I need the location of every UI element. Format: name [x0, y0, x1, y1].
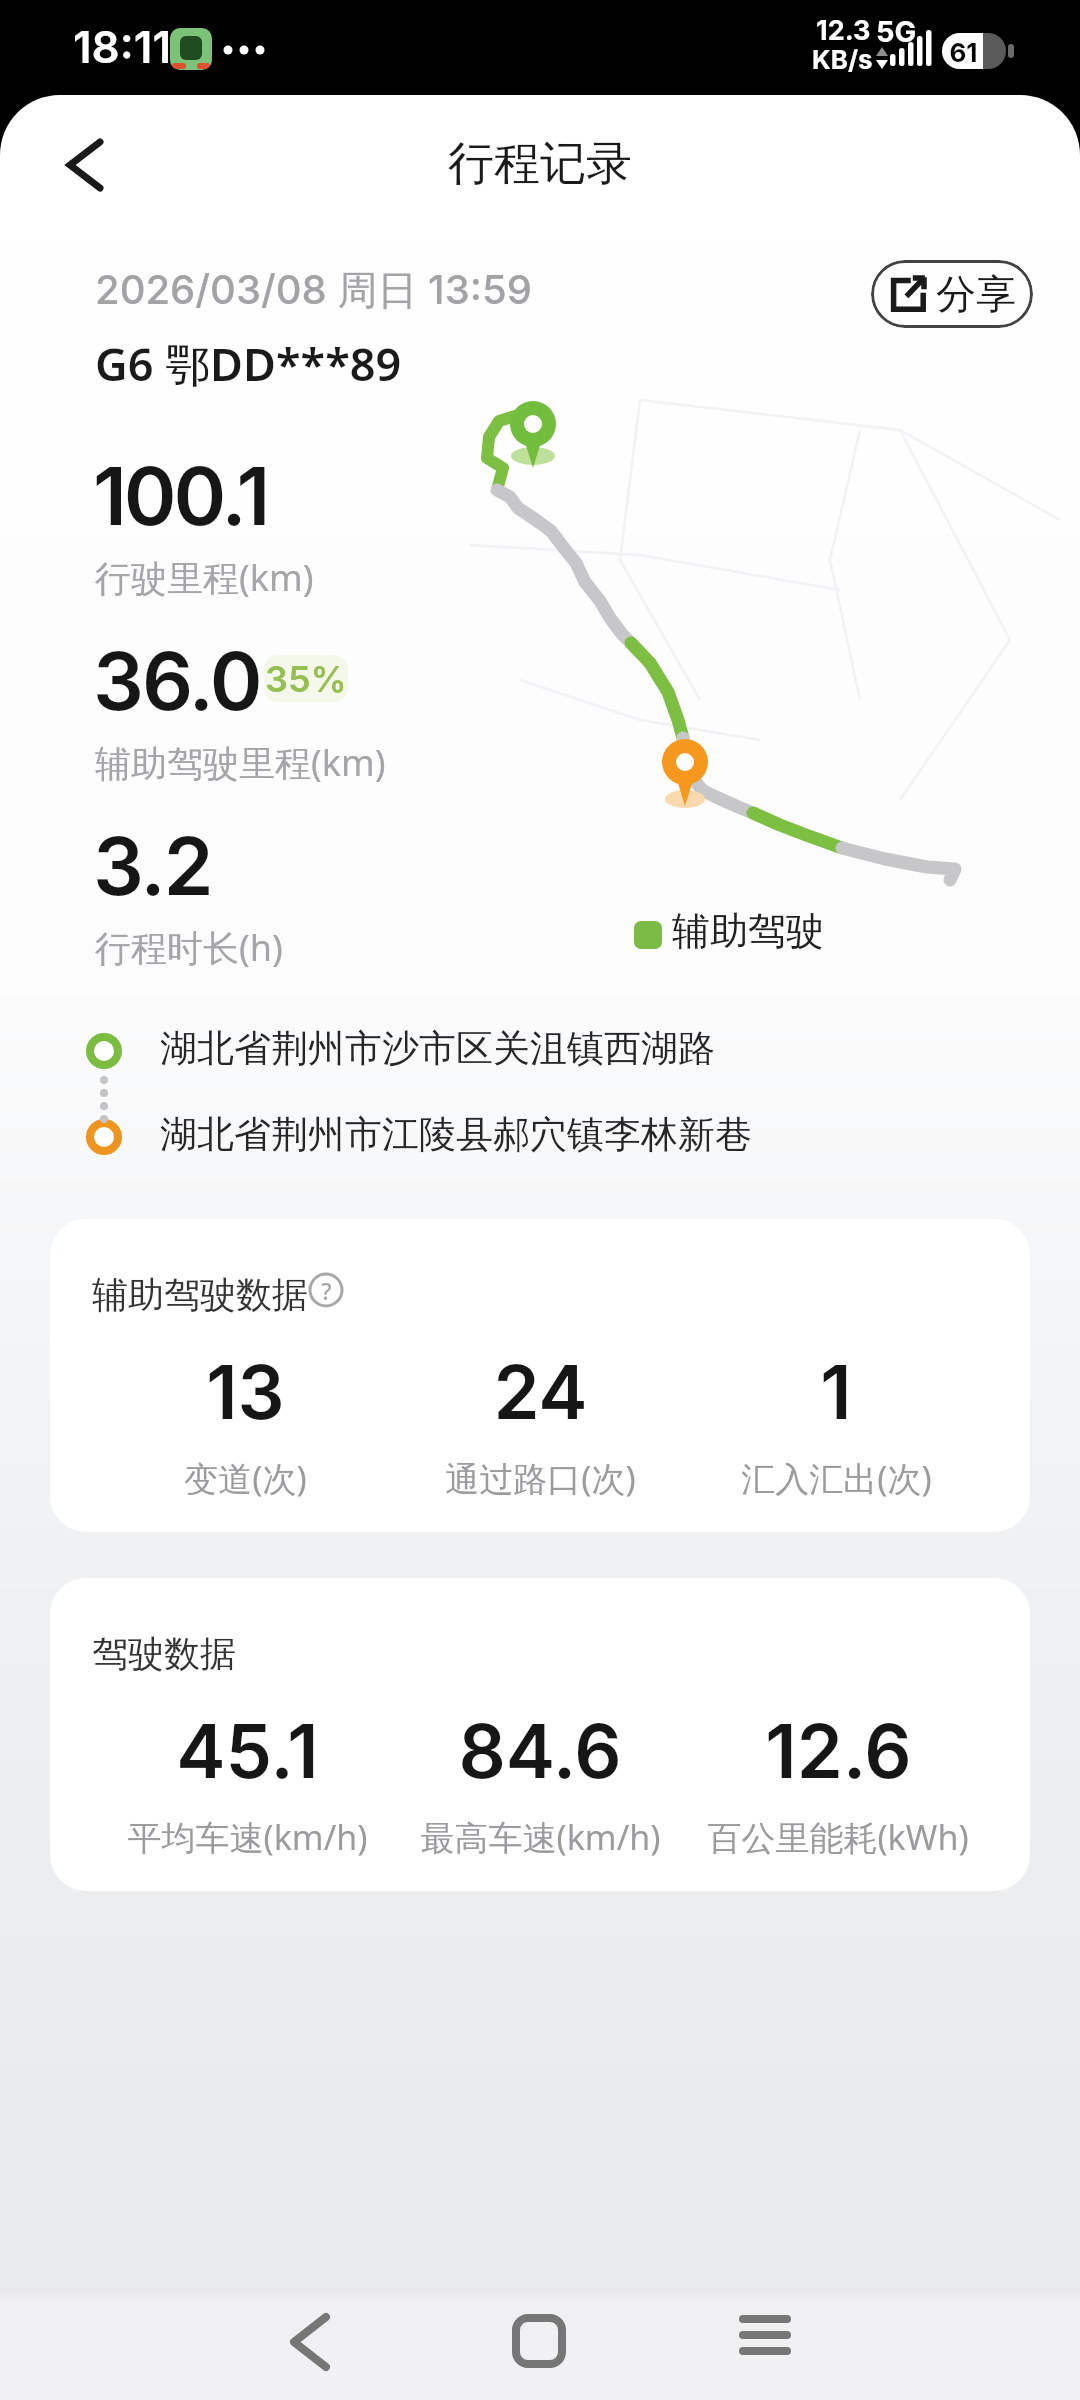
staticText: 湖北省荆州市江陵县郝穴镇李林新巷 [160, 1111, 752, 1158]
staticText: 行程时长(h) [95, 923, 283, 972]
staticText: 平均车速(km/h) [127, 1814, 368, 1860]
staticText: G6 鄂DD***89 [95, 333, 402, 394]
button[interactable]: 驾驶数据 [50, 1578, 1030, 1891]
staticText: 12.3 [816, 14, 871, 47]
staticText: 辅助驾驶数据 [92, 1272, 308, 1317]
staticText: 行驶里程(km) [95, 553, 314, 602]
staticText: 1 [820, 1347, 852, 1437]
staticText: KB/s [812, 44, 873, 75]
staticText: 84.6 [458, 1706, 622, 1796]
staticText: 最高车速(km/h) [420, 1814, 661, 1860]
staticText: 13 [206, 1347, 285, 1437]
staticText: 36.0 [93, 632, 261, 729]
staticText: 通过路口(次) [445, 1455, 636, 1501]
staticText: 变道(次) [184, 1455, 307, 1501]
staticText: 2026/03/08 周日 13:59 [95, 265, 532, 316]
staticText: 35% [265, 657, 347, 701]
staticText: 100.1 [93, 447, 268, 544]
button[interactable]: 辅助驾驶数据 [50, 1219, 1030, 1532]
button[interactable] [705, 2280, 825, 2400]
staticText: 18:11 [73, 20, 172, 73]
staticText: 驾驶数据 [92, 1631, 236, 1676]
staticText: 辅助驾驶 [672, 907, 824, 955]
staticText: 分享 [936, 269, 1016, 319]
staticText: 百公里能耗(kWh) [707, 1814, 969, 1860]
staticText: 汇入汇出(次) [741, 1455, 932, 1501]
staticText: 12.6 [765, 1706, 912, 1796]
staticText: 行程记录 [448, 135, 632, 193]
staticText: 61 [949, 37, 978, 68]
button[interactable] [30, 115, 130, 205]
staticText: 湖北省荆州市沙市区关沮镇西湖路 [160, 1025, 715, 1072]
button[interactable] [480, 2280, 600, 2400]
staticText: 辅助驾驶里程(km) [95, 738, 386, 787]
staticText: 3.2 [93, 817, 212, 914]
staticText: 5G [876, 14, 917, 49]
staticText: 45.1 [176, 1706, 319, 1796]
staticText: ? [321, 1275, 332, 1306]
staticText: 24 [493, 1347, 588, 1437]
button[interactable]: 分享 [871, 260, 1033, 328]
button[interactable] [250, 2280, 370, 2400]
